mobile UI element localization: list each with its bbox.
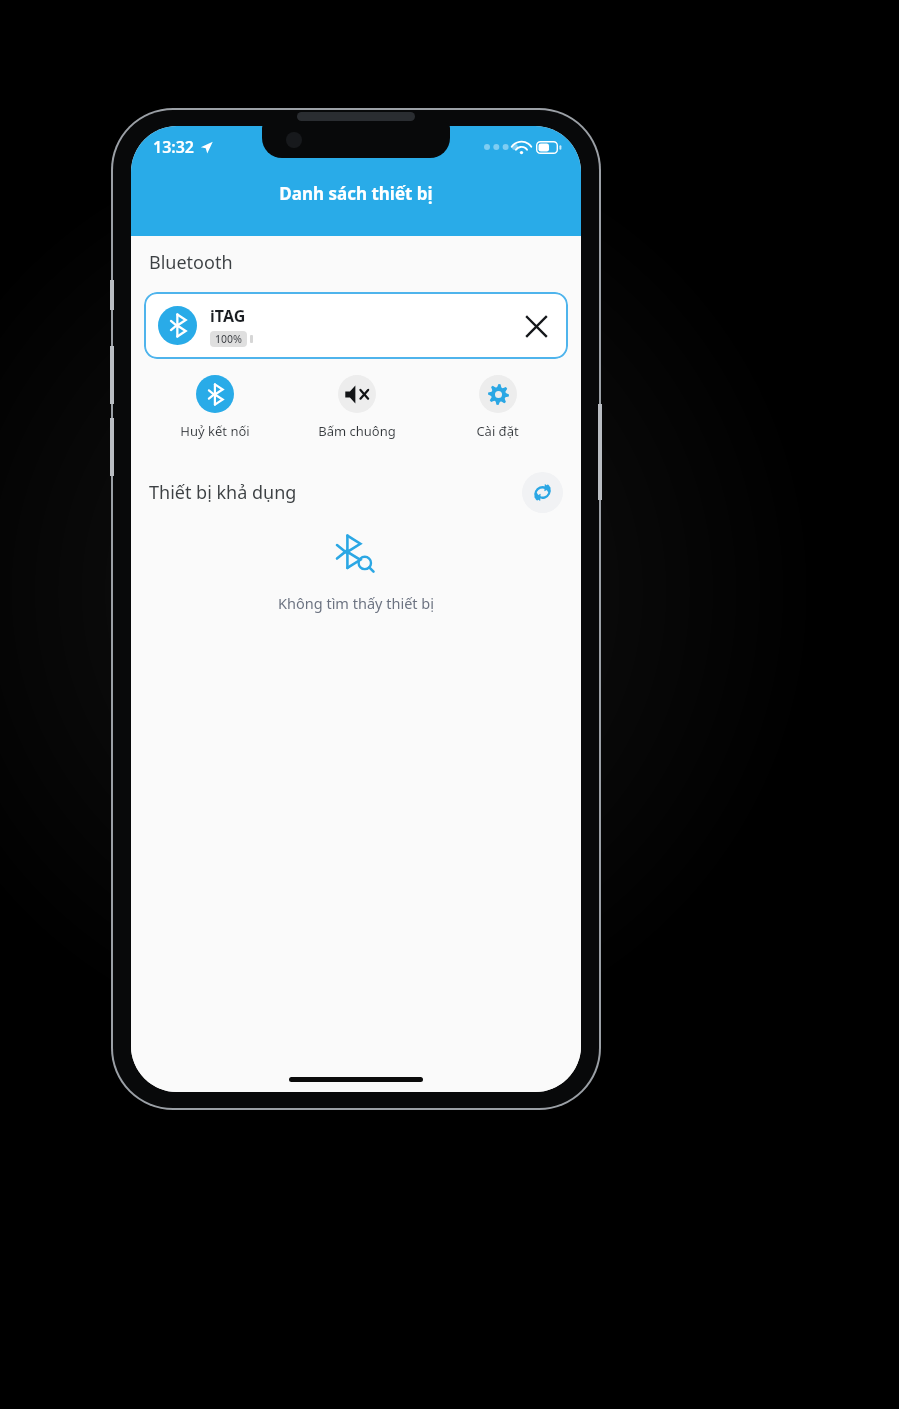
button[interactable]: Cài đặt: [427, 373, 568, 442]
staticText: Thiết bị khả dụng: [149, 480, 297, 505]
staticText: Huỷ kết nối: [180, 422, 250, 440]
button[interactable]: Làm mới: [522, 472, 563, 513]
staticText: Danh sách thiết bị: [279, 182, 433, 205]
staticText: Cài đặt: [476, 422, 519, 440]
button[interactable]: iTAG: [144, 292, 568, 359]
button[interactable]: Huỷ kết nối: [144, 373, 286, 442]
button[interactable]: Bấm chuông: [286, 373, 427, 442]
staticText: Không tìm thấy thiết bị: [278, 593, 434, 613]
staticText: 13:32: [153, 136, 195, 158]
staticText: 100%: [215, 332, 242, 346]
staticText: Bluetooth: [149, 250, 233, 275]
staticText: Bấm chuông: [318, 422, 396, 440]
button[interactable]: Xoá thiết bị: [518, 308, 554, 344]
staticText: iTAG: [210, 305, 246, 327]
